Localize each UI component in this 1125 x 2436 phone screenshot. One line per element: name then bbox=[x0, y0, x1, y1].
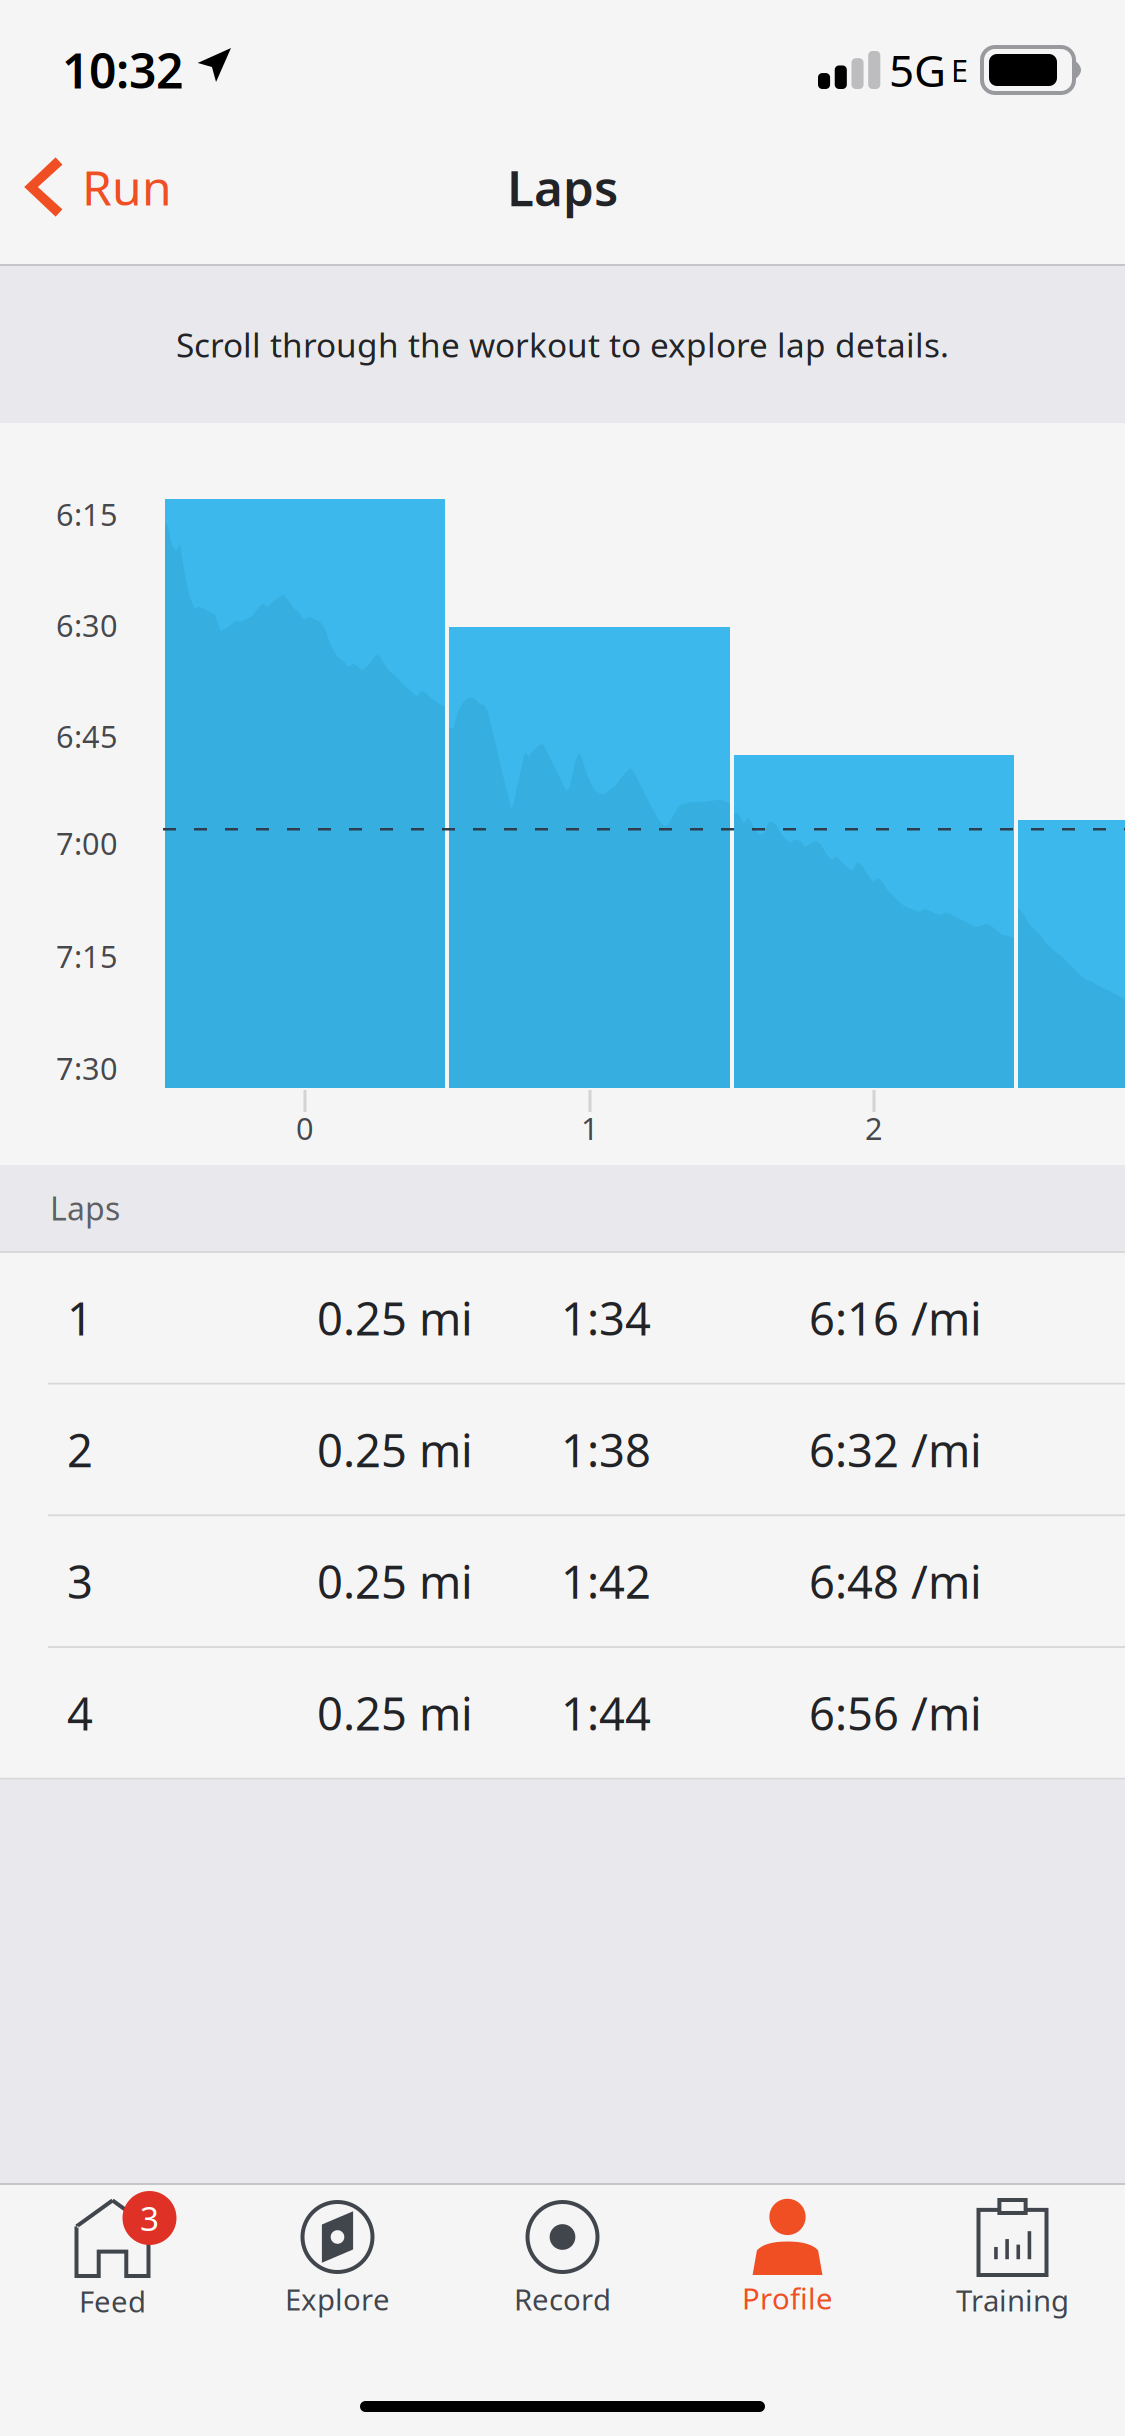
staticText: 1:44 bbox=[561, 1683, 651, 1743]
button[interactable]: 4 bbox=[0, 1648, 1125, 1778]
staticText: 6:45 bbox=[56, 716, 118, 756]
staticText: 2 bbox=[67, 1419, 93, 1480]
button[interactable]: Profile bbox=[675, 2185, 900, 2355]
staticText: 6:48 /mi bbox=[809, 1551, 982, 1611]
staticText: 1:42 bbox=[561, 1551, 651, 1611]
staticText: 7:30 bbox=[56, 1048, 118, 1088]
staticText: 1:38 bbox=[561, 1419, 651, 1480]
staticText: 7:00 bbox=[56, 823, 118, 863]
staticText: E bbox=[951, 50, 968, 90]
staticText: 6:56 /mi bbox=[809, 1683, 982, 1743]
staticText: 2 bbox=[865, 1108, 883, 1148]
staticText: 6:32 /mi bbox=[809, 1419, 982, 1480]
staticText: Laps bbox=[50, 1187, 120, 1229]
staticText: 4 bbox=[67, 1683, 93, 1743]
staticText: Profile bbox=[742, 2278, 833, 2317]
button[interactable]: 3 bbox=[0, 2185, 225, 2355]
button[interactable]: Run bbox=[0, 135, 172, 239]
staticText: 0 bbox=[296, 1108, 314, 1148]
button[interactable]: Training bbox=[900, 2185, 1125, 2355]
staticText: Training bbox=[956, 2280, 1069, 2319]
button[interactable]: 3 bbox=[0, 1516, 1125, 1646]
staticText: 0.25 mi bbox=[317, 1683, 473, 1743]
staticText: Explore bbox=[285, 2279, 390, 2318]
button[interactable]: Record bbox=[450, 2185, 675, 2355]
staticText: 1 bbox=[581, 1108, 599, 1148]
staticText: 6:16 /mi bbox=[809, 1288, 982, 1348]
staticText: 1 bbox=[67, 1288, 93, 1348]
staticText: 3 bbox=[67, 1551, 93, 1611]
button[interactable]: Explore bbox=[225, 2185, 450, 2355]
staticText: 6:15 bbox=[56, 494, 118, 534]
staticText: Run bbox=[82, 155, 172, 219]
button[interactable]: 1 bbox=[0, 1253, 1125, 1383]
staticText: 0.25 mi bbox=[317, 1288, 473, 1348]
staticText: 0.25 mi bbox=[317, 1551, 473, 1611]
staticText: Record bbox=[514, 2279, 611, 2318]
staticText: Scroll through the workout to explore la… bbox=[176, 322, 949, 367]
staticText: 0.25 mi bbox=[317, 1419, 473, 1480]
staticText: 6:30 bbox=[56, 605, 118, 645]
button[interactable]: 2 bbox=[0, 1385, 1125, 1514]
staticText: 1:34 bbox=[561, 1288, 651, 1348]
staticText: 7:15 bbox=[56, 936, 118, 976]
staticText: 10:32 bbox=[62, 38, 183, 102]
staticText: 3 bbox=[140, 2196, 159, 2240]
staticText: Laps bbox=[507, 154, 618, 220]
staticText: 5G bbox=[889, 41, 946, 99]
staticText: Feed bbox=[79, 2281, 146, 2320]
